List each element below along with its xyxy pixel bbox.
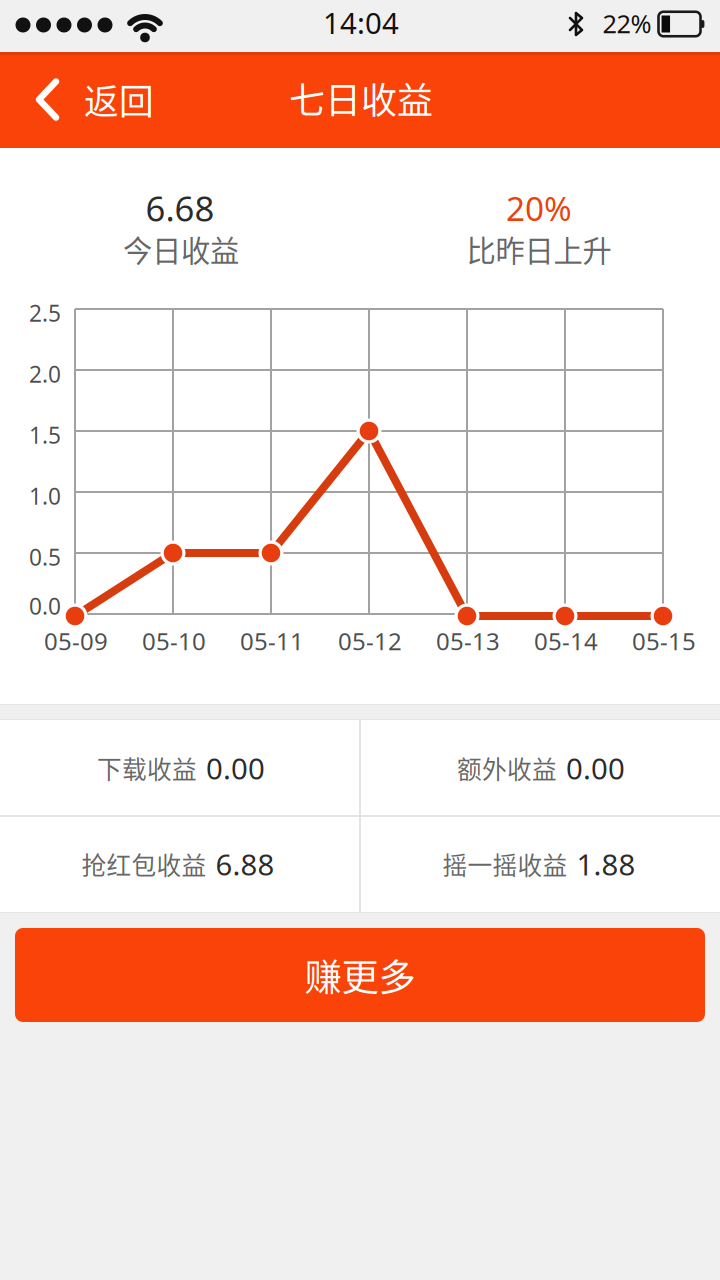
staticText: 2.5 bbox=[29, 298, 61, 328]
staticText: 抢红包收益 bbox=[81, 846, 206, 882]
staticText: 05-11 bbox=[240, 625, 304, 657]
staticText: 05-14 bbox=[534, 625, 598, 657]
staticText: 0.00 bbox=[206, 748, 265, 787]
staticText: 0.00 bbox=[566, 748, 625, 787]
staticText: 0.5 bbox=[29, 542, 61, 572]
button[interactable]: 赚更多 bbox=[15, 928, 705, 1022]
staticText: 今日收益 bbox=[123, 228, 239, 270]
staticText: 1.0 bbox=[29, 481, 61, 511]
staticText: 22% bbox=[602, 7, 651, 40]
staticText: 14:04 bbox=[323, 3, 399, 42]
staticText: 6.88 bbox=[215, 844, 274, 883]
staticText: 0.0 bbox=[29, 591, 61, 621]
staticText: 返回 bbox=[84, 74, 154, 125]
staticText: 1.88 bbox=[576, 844, 635, 883]
staticText: 05-12 bbox=[338, 625, 402, 657]
staticText: 05-13 bbox=[436, 625, 500, 657]
button[interactable]: 返回 bbox=[36, 51, 154, 147]
staticText: 额外收益 bbox=[457, 750, 557, 786]
staticText: 05-09 bbox=[44, 625, 108, 657]
staticText: 05-15 bbox=[632, 625, 696, 657]
staticText: 05-10 bbox=[142, 625, 206, 657]
staticText: 赚更多 bbox=[304, 948, 415, 1002]
staticText: 七日收益 bbox=[289, 72, 433, 124]
staticText: 摇一摇收益 bbox=[442, 846, 567, 882]
staticText: 2.0 bbox=[29, 359, 61, 389]
staticText: 6.68 bbox=[145, 185, 214, 231]
staticText: 下载收益 bbox=[97, 750, 197, 786]
staticText: 20% bbox=[506, 186, 572, 230]
staticText: 1.5 bbox=[29, 420, 61, 450]
staticText: 比昨日上升 bbox=[466, 228, 611, 270]
